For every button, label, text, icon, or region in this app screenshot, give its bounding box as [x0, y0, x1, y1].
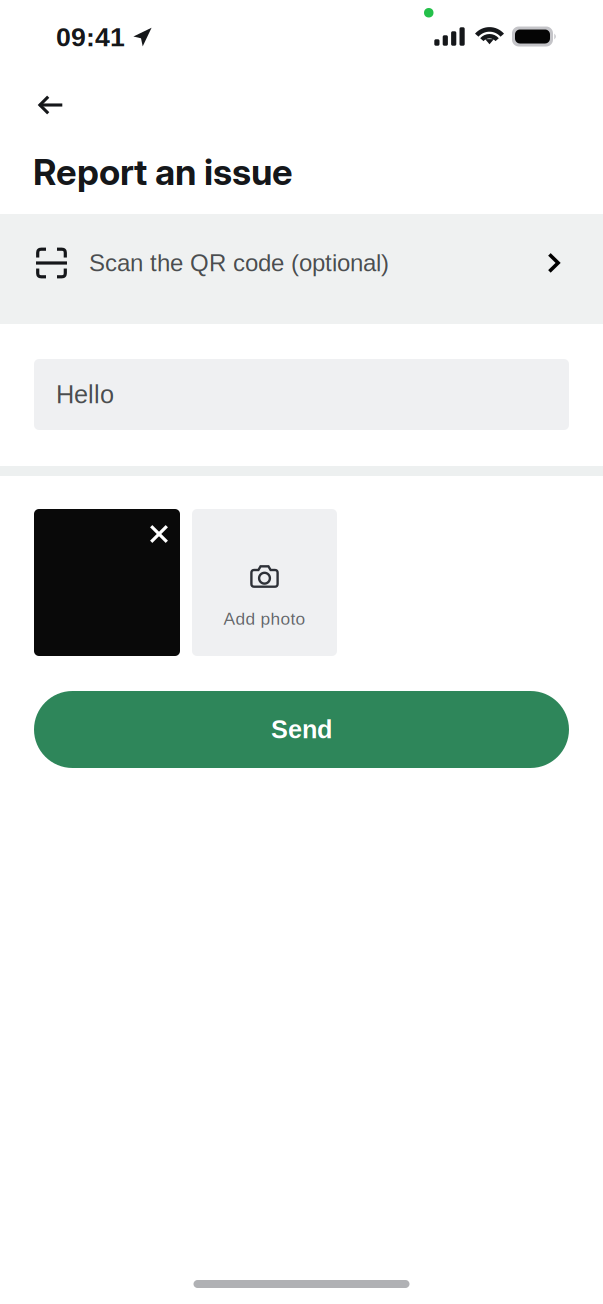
button[interactable]: Add photo [192, 509, 337, 656]
button[interactable]: Scan the QR code (optional) [0, 214, 603, 324]
staticText: Scan the QR code (optional) [89, 250, 389, 276]
staticText: Report an issue [33, 150, 293, 194]
staticText: Send [271, 715, 332, 744]
button[interactable]: Remove photo [142, 517, 176, 551]
staticText: Hello [56, 380, 114, 409]
button[interactable]: Back [22, 79, 80, 141]
staticText: Add photo [223, 609, 305, 628]
staticText: 09:41 [56, 22, 125, 52]
button[interactable]: Send [34, 691, 569, 768]
